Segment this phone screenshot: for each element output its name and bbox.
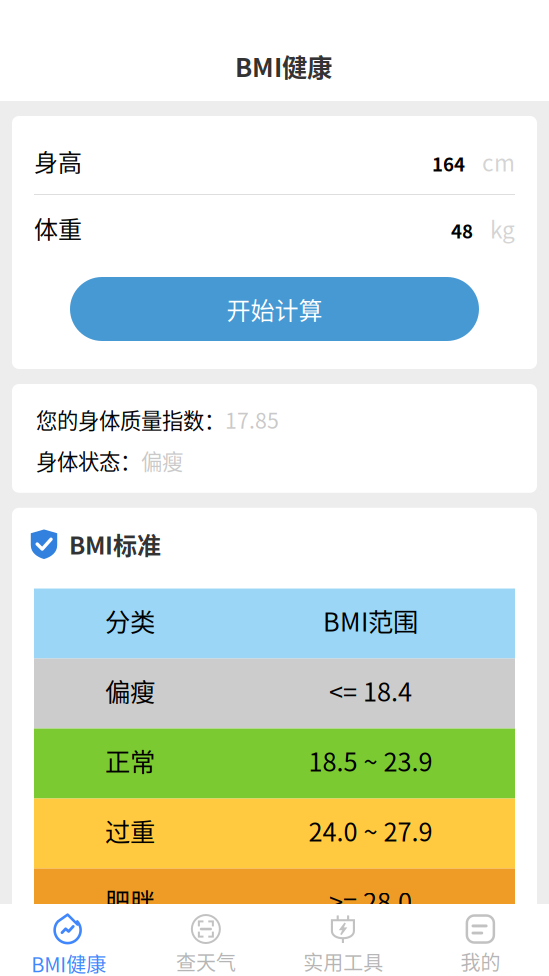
staticText: BMI标准 xyxy=(69,527,161,562)
staticText: 正常 xyxy=(105,742,155,779)
staticText: 偏瘦 xyxy=(105,672,155,709)
button[interactable]: 我的 xyxy=(412,904,549,976)
button[interactable]: 开始计算 xyxy=(70,277,479,341)
staticText: cm xyxy=(482,145,515,178)
staticText: <= 18.4 xyxy=(329,672,412,709)
staticText: 48 xyxy=(451,217,473,244)
staticText: 过重 xyxy=(105,812,155,849)
staticText: 17.85 xyxy=(225,404,279,435)
staticText: BMI健康 xyxy=(31,949,106,976)
staticText: >= 28.0 xyxy=(329,882,412,919)
staticText: 18.5 ~ 23.9 xyxy=(308,742,432,779)
staticText: 查天气 xyxy=(176,947,236,976)
staticText: 体重 xyxy=(34,211,82,245)
staticText: BMI范围 xyxy=(323,602,418,639)
staticText: 偏瘦 xyxy=(141,445,183,476)
button[interactable]: 实用工具 xyxy=(274,904,412,976)
staticText: 分类 xyxy=(105,602,155,639)
button[interactable]: 查天气 xyxy=(137,904,274,976)
staticText: 我的 xyxy=(460,947,500,976)
staticText: 24.0 ~ 27.9 xyxy=(308,812,432,849)
staticText: 身高 xyxy=(34,144,82,178)
staticText: 开始计算 xyxy=(226,292,322,326)
staticText: 肥胖 xyxy=(105,882,155,919)
button[interactable]: BMI健康 xyxy=(0,904,137,976)
staticText: 实用工具 xyxy=(303,947,383,976)
staticText: 身体状态： xyxy=(36,445,141,476)
staticText: BMI健康 xyxy=(235,48,332,84)
staticText: 您的身体质量指数： xyxy=(36,404,225,435)
staticText: 164 xyxy=(432,150,465,177)
staticText: kg xyxy=(490,212,515,245)
